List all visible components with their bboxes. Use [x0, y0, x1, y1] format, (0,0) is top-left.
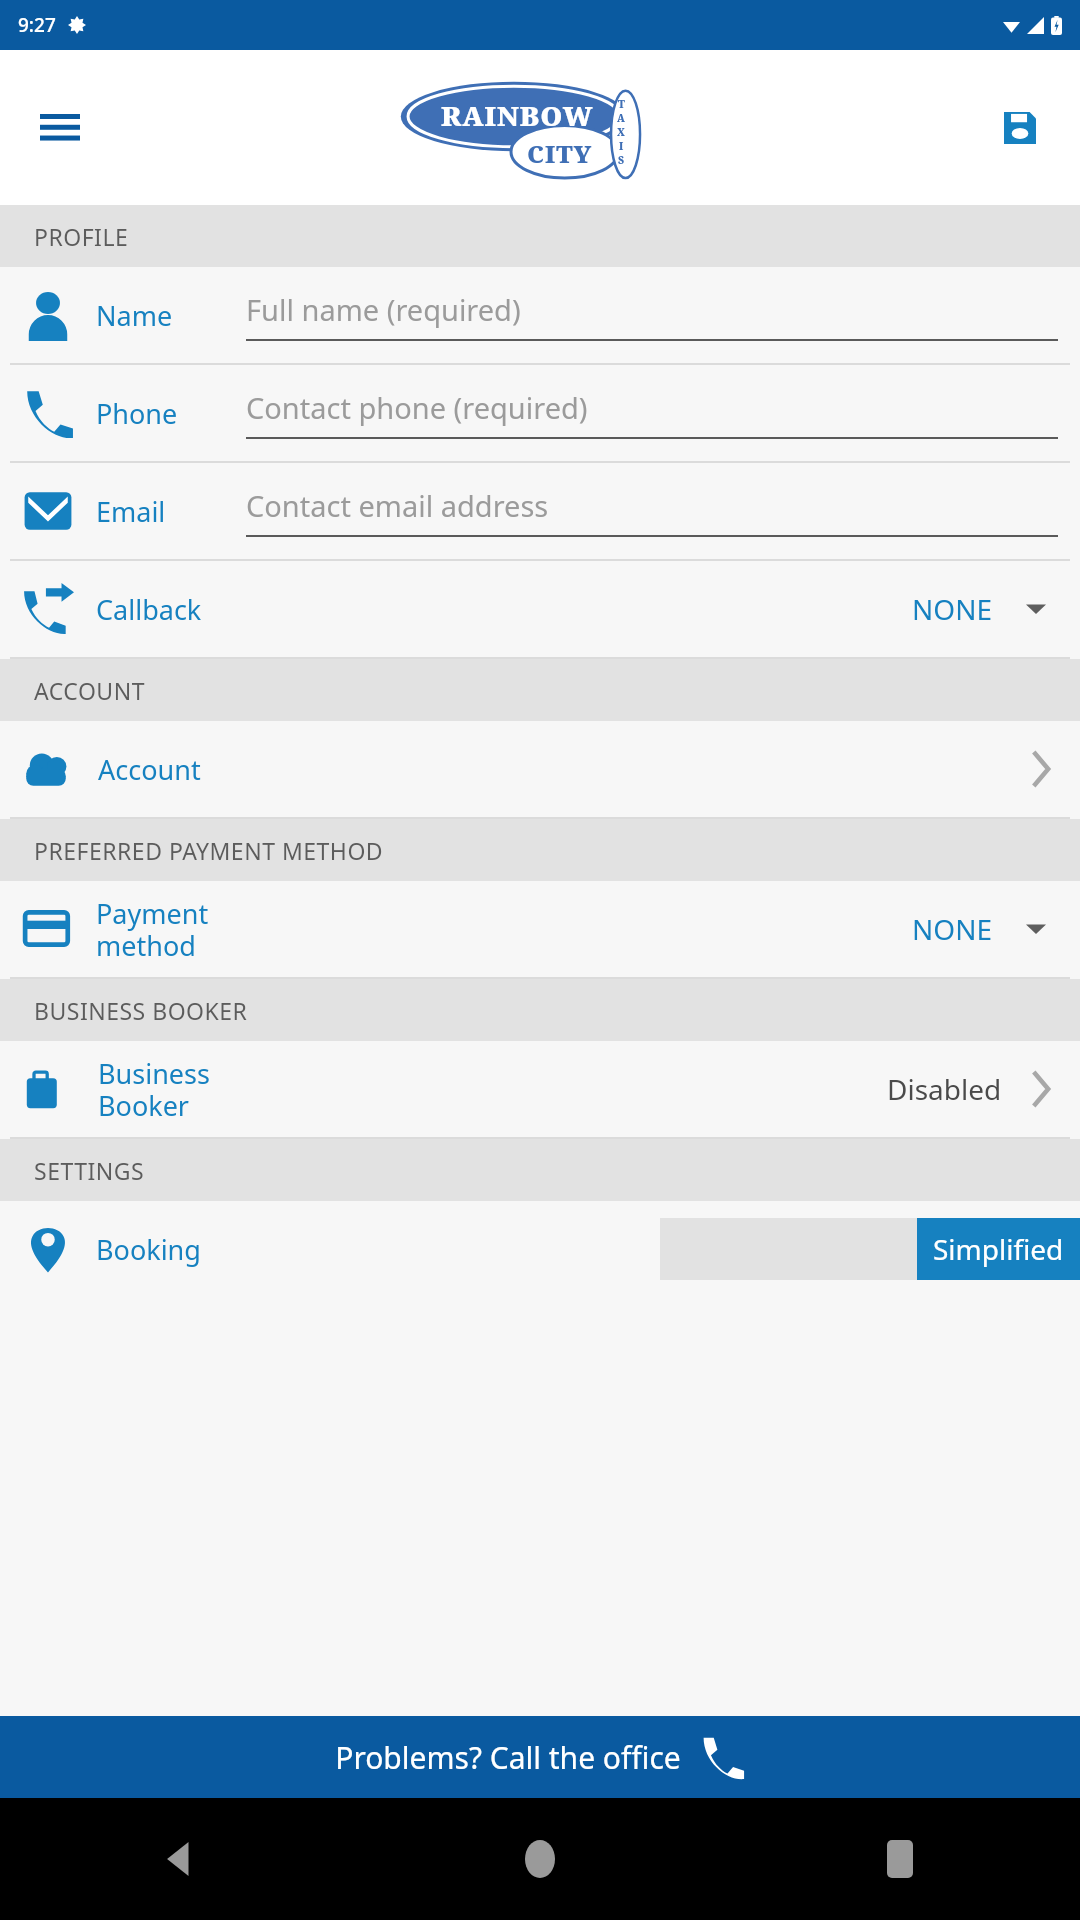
staticText: T: [618, 97, 625, 111]
staticText: Payment method: [96, 895, 209, 964]
staticText: S: [618, 153, 625, 167]
staticText: RAINBOW: [441, 97, 594, 134]
button[interactable]: Business Booker: [0, 1041, 1080, 1137]
staticText: Email: [96, 493, 246, 530]
staticText: Simplified: [933, 1230, 1064, 1268]
staticText: NONE: [912, 590, 992, 628]
button[interactable]: Simplified: [917, 1218, 1080, 1280]
button[interactable]: Booking: [0, 1201, 1080, 1297]
staticText: CITY: [527, 137, 593, 170]
staticText: I: [619, 139, 624, 153]
button[interactable]: Problems? Call the office: [0, 1716, 1080, 1798]
staticText: ACCOUNT: [34, 675, 145, 706]
staticText: SETTINGS: [34, 1155, 145, 1186]
staticText: Disabled: [887, 1070, 1002, 1108]
button[interactable]: Phone: [0, 365, 1080, 461]
staticText: 9:27: [18, 12, 56, 38]
staticText: Contact email address: [246, 486, 549, 525]
staticText: PREFERRED PAYMENT METHOD: [34, 835, 384, 866]
staticText: Booking: [96, 1231, 201, 1268]
button[interactable]: Payment method: [0, 881, 1080, 977]
staticText: A: [617, 111, 625, 125]
button[interactable]: Menu: [32, 100, 88, 156]
staticText: Contact phone (required): [246, 388, 588, 427]
staticText: BUSINESS BOOKER: [34, 995, 248, 1026]
staticText: Phone: [96, 395, 246, 432]
staticText: Name: [96, 297, 246, 334]
staticText: X: [617, 125, 625, 139]
button[interactable]: Back: [0, 1798, 360, 1920]
button[interactable]: Recents: [720, 1798, 1080, 1920]
button[interactable]: Callback: [0, 561, 1080, 657]
button[interactable]: Save: [990, 98, 1050, 158]
staticText: Business Booker: [98, 1055, 210, 1124]
staticText: Full name (required): [246, 290, 521, 329]
staticText: Account: [98, 751, 201, 788]
button[interactable]: Account: [0, 721, 1080, 817]
button[interactable]: Email: [0, 463, 1080, 559]
button[interactable]: Name: [0, 267, 1080, 363]
button[interactable]: Home: [360, 1798, 720, 1920]
staticText: Problems? Call the office: [335, 1737, 681, 1778]
staticText: Callback: [96, 591, 202, 628]
staticText: PROFILE: [34, 221, 129, 252]
staticText: NONE: [912, 910, 992, 948]
